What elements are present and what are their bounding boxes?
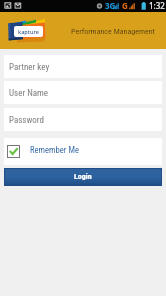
staticText: Login <box>74 172 92 181</box>
staticText: kapture <box>18 28 39 36</box>
button[interactable]: Login <box>4 168 162 186</box>
button[interactable]: Partner key <box>4 55 162 78</box>
staticText: Partner key <box>9 62 50 73</box>
staticText: G <box>122 0 128 11</box>
button[interactable]: Password <box>4 108 162 131</box>
staticText: User Name <box>9 88 49 99</box>
button[interactable]: User Name <box>4 81 162 104</box>
staticText: 1:32 <box>149 0 165 11</box>
staticText: Password <box>9 115 44 126</box>
staticText: Remember Me <box>30 145 79 155</box>
staticText: Performance Management <box>71 27 155 36</box>
staticText: 3G <box>105 0 116 11</box>
button[interactable]: Remember Me <box>4 138 162 165</box>
